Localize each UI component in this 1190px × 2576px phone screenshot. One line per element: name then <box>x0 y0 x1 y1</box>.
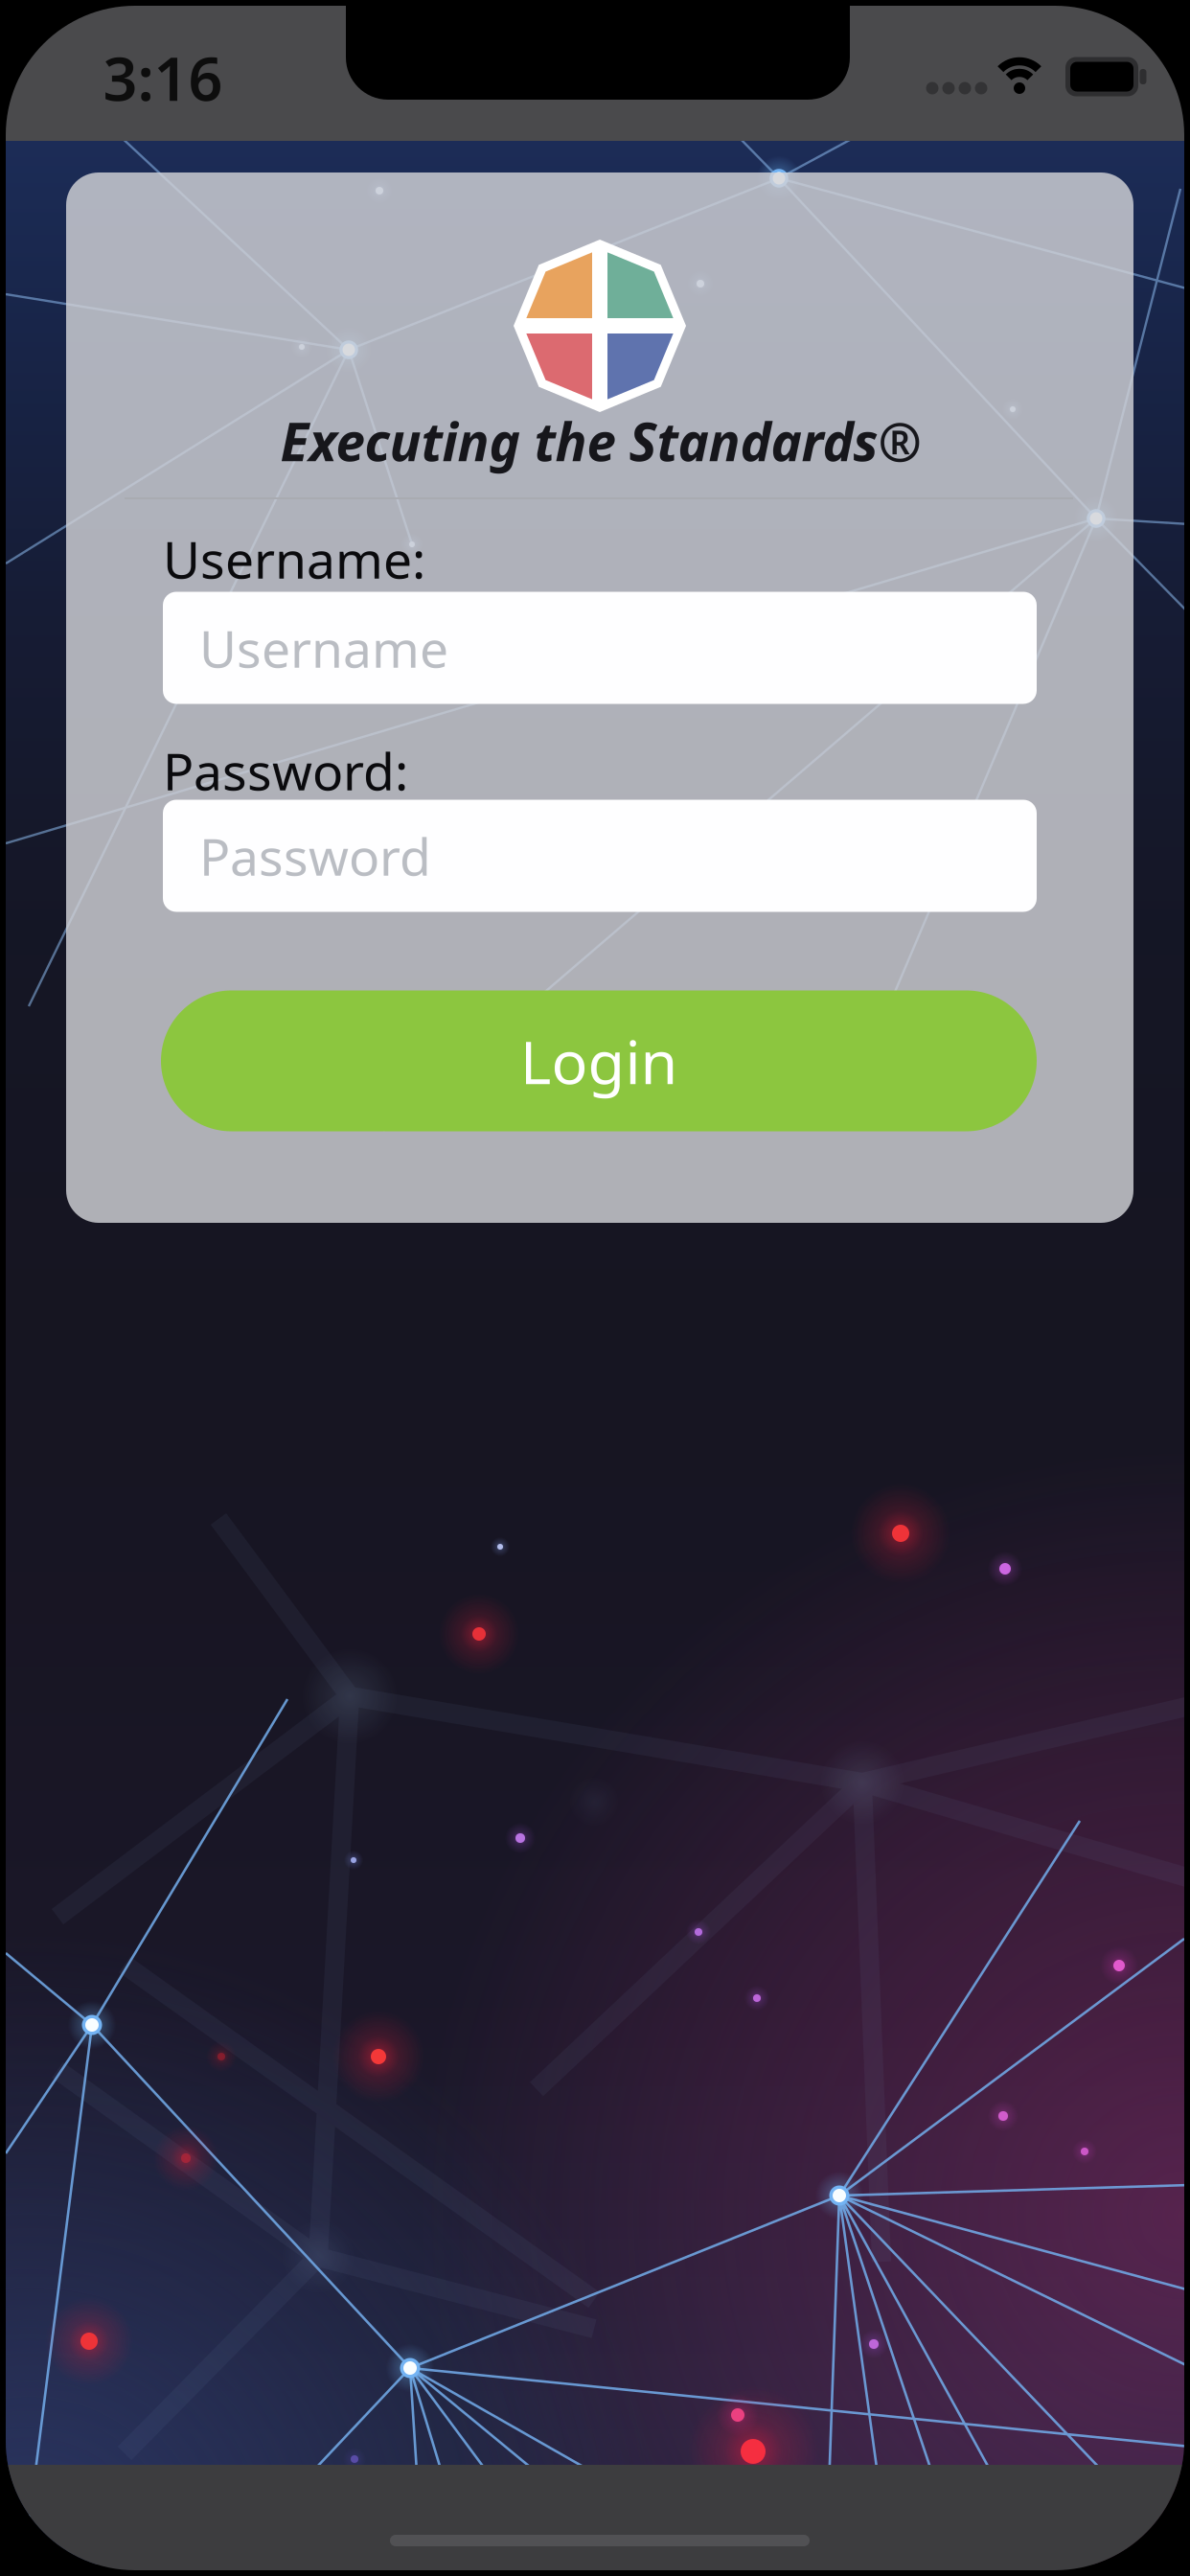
button[interactable]: Login <box>161 990 1037 1131</box>
staticText: Login <box>520 1021 678 1101</box>
button[interactable]: Password <box>163 800 1037 912</box>
staticText: Username <box>199 614 448 682</box>
staticText: Password <box>199 822 431 890</box>
button[interactable]: Username <box>163 592 1037 704</box>
staticText: 3:16 <box>103 38 223 117</box>
staticText: Executing the Standards® <box>280 406 921 476</box>
staticText: Username: <box>163 525 425 593</box>
staticText: Password: <box>163 737 408 804</box>
